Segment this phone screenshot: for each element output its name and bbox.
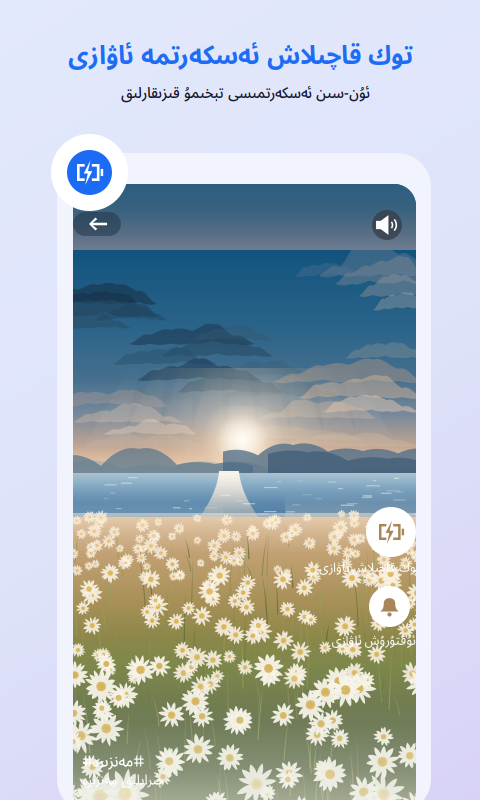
button[interactable]: Notification sound <box>369 586 410 627</box>
button[interactable]: Sound on <box>372 210 402 240</box>
button[interactable]: Back <box>73 212 121 236</box>
staticText: ئۇقتۇرۇش ئاۋازى <box>331 630 415 649</box>
button[interactable]: Charging sound <box>366 507 416 557</box>
staticText: #مەنزىرە# <box>82 750 143 771</box>
staticText: چىرايلىق مەنزىرە <box>82 769 163 789</box>
staticText: ئۇن-سىن ئەسكەرتمىسى تېخىمۇ قىزىقارلىق <box>120 82 369 102</box>
button[interactable]: Charging alert app <box>51 134 128 211</box>
staticText: توك قاچىلاش ئەسكەرتمە ئاۋازى <box>67 36 412 72</box>
staticText: توك قاچىلاش ئاۋازى <box>318 557 419 576</box>
